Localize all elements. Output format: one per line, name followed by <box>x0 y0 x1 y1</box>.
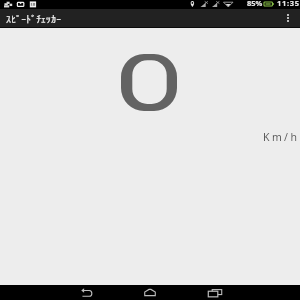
button[interactable]: More options <box>276 9 300 28</box>
staticText: Km/h <box>263 130 300 144</box>
staticText: ｽﾋﾟｰﾄﾞﾁｪｯｶｰ <box>6 14 61 24</box>
button[interactable]: Back <box>66 285 107 300</box>
button[interactable]: Recent apps <box>194 285 235 300</box>
staticText: 11:35 <box>277 0 300 7</box>
staticText: 85% <box>247 0 263 7</box>
button[interactable]: Home <box>129 285 170 300</box>
